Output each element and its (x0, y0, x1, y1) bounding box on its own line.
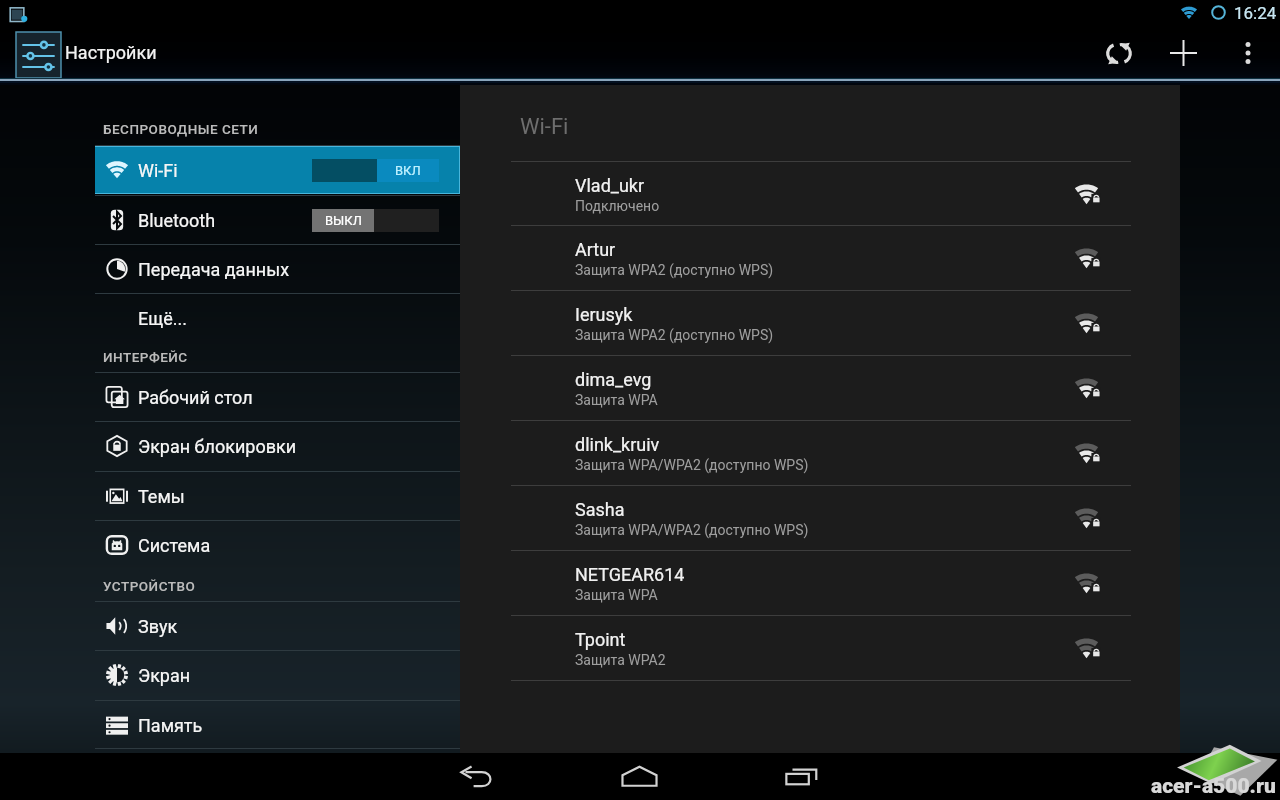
staticText: Защита WPA2 (575, 652, 666, 668)
staticText: Artur (575, 239, 616, 260)
staticText: Система (138, 535, 211, 556)
staticText: Темы (138, 486, 185, 507)
button[interactable]: Экран блокировки (95, 422, 460, 470)
staticText: Экран блокировки (138, 436, 297, 457)
button[interactable]: Bluetooth (95, 196, 460, 244)
staticText: dima_evg (575, 369, 652, 390)
button[interactable]: dima_evg (460, 356, 1180, 420)
staticText: Передача данных (138, 259, 290, 280)
staticText: Sasha (575, 499, 625, 520)
button[interactable]: Vlad_ukr (460, 162, 1180, 226)
button[interactable]: Система (95, 521, 460, 569)
staticText: acer-a500.ru (1151, 774, 1276, 799)
staticText: Экран (138, 665, 191, 686)
button[interactable]: Artur (460, 226, 1180, 290)
staticText: Ierusyk (575, 304, 633, 325)
button[interactable]: More options (1224, 28, 1272, 80)
button[interactable]: Рабочий стол (95, 373, 460, 421)
button[interactable]: dlink_kruiv (460, 421, 1180, 485)
staticText: Защита WPA (575, 587, 658, 603)
staticText: dlink_kruiv (575, 434, 660, 455)
staticText: УСТРОЙСТВО (103, 578, 196, 594)
staticText: Защита WPA2 (доступно WPS) (575, 327, 774, 343)
staticText: БЕСПРОВОДНЫЕ СЕТИ (103, 121, 259, 137)
staticText: Рабочий стол (138, 387, 253, 408)
button[interactable]: Память (95, 701, 460, 749)
button[interactable]: Home (598, 753, 680, 800)
staticText: Bluetooth (138, 210, 216, 231)
button[interactable]: Экран (95, 651, 460, 699)
button[interactable]: Wi-Fi (95, 146, 460, 194)
button[interactable]: Tpoint (460, 616, 1180, 680)
staticText: Защита WPA/WPA2 (доступно WPS) (575, 522, 809, 538)
staticText: Wi-Fi (520, 114, 569, 140)
staticText: Wi-Fi (138, 160, 178, 181)
button[interactable]: NETGEAR614 (460, 551, 1180, 615)
button[interactable]: Recent apps (761, 753, 843, 800)
staticText: ВЫКЛ (325, 213, 362, 228)
staticText: Защита WPA (575, 392, 658, 408)
staticText: Tpoint (575, 629, 626, 650)
button[interactable]: Темы (95, 472, 460, 520)
staticText: Vlad_ukr (575, 175, 645, 196)
staticText: Настройки (65, 42, 157, 63)
staticText: NETGEAR614 (575, 564, 685, 585)
staticText: Защита WPA/WPA2 (доступно WPS) (575, 457, 809, 473)
button[interactable]: Звук (95, 602, 460, 650)
button[interactable]: Ierusyk (460, 291, 1180, 355)
staticText: ИНТЕРФЕЙС (103, 349, 188, 365)
staticText: Ещё... (138, 308, 188, 329)
button[interactable]: Back (436, 753, 518, 800)
staticText: Защита WPA2 (доступно WPS) (575, 262, 774, 278)
staticText: Звук (138, 616, 178, 637)
staticText: Подключено (575, 198, 660, 214)
button[interactable]: Sasha (460, 486, 1180, 550)
button[interactable]: Scan for networks (1093, 28, 1145, 80)
staticText: ВКЛ (395, 163, 421, 178)
staticText: Память (138, 715, 203, 736)
button[interactable]: Ещё... (95, 294, 460, 342)
button[interactable]: Add network (1157, 28, 1209, 80)
button[interactable]: Передача данных (95, 245, 460, 293)
staticText: 16:24 (1234, 3, 1277, 23)
